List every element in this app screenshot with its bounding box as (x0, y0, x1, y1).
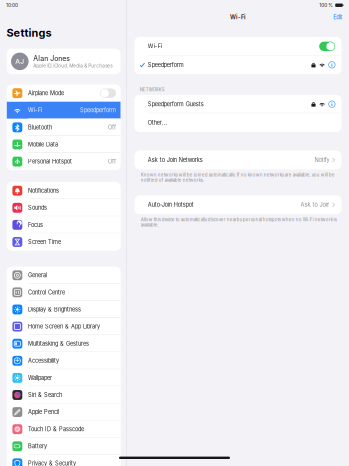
button[interactable]: Sounds (7, 199, 120, 216)
staticText: Privacy & Security (28, 460, 76, 466)
staticText: Speedperform Guests (148, 101, 204, 107)
staticText: Ask to Join Networks (148, 157, 203, 163)
button[interactable]: Other... (135, 113, 341, 132)
button[interactable]: Privacy & Security (7, 455, 120, 466)
staticText: Mobile Data (28, 141, 58, 148)
button[interactable]: Screen Time (7, 233, 120, 250)
staticText: Multitasking & Gestures (28, 340, 89, 347)
button[interactable]: Touch ID & Passcode (7, 421, 120, 438)
button[interactable]: Home Screen & App Library (7, 318, 120, 335)
button[interactable]: Edit (329, 12, 349, 23)
staticText: Apple Pencil (28, 409, 59, 415)
staticText: 10:00 (6, 2, 18, 8)
button[interactable]: Focus (7, 216, 120, 233)
staticText: Known networks will be joined automatica… (141, 172, 335, 183)
staticText: General (28, 272, 47, 279)
staticText: Accessibility (28, 357, 59, 364)
button[interactable]: Display & Brightness (7, 301, 120, 318)
staticText: Other... (148, 119, 168, 126)
staticText: Off (108, 124, 116, 131)
button[interactable]: Accessibility (7, 352, 120, 369)
button[interactable]: Apple Pencil (7, 403, 120, 421)
staticText: Sounds (28, 204, 47, 211)
button[interactable]: Mobile Data (7, 136, 120, 153)
button[interactable]: AJ (7, 49, 120, 74)
staticText: Bluetooth (28, 124, 52, 131)
button[interactable]: Bluetooth (7, 119, 120, 136)
staticText: 100 % (319, 2, 333, 8)
staticText: Ask to Join (300, 201, 329, 208)
button[interactable]: Auto-Join Hotspot (135, 195, 341, 214)
staticText: Speedperform (148, 61, 184, 68)
button[interactable]: Airplane Mode (7, 85, 120, 102)
button[interactable]: Battery (7, 438, 120, 455)
staticText: Notifications (28, 187, 59, 194)
staticText: Focus (28, 221, 43, 228)
staticText: Wi-Fi (230, 14, 246, 21)
staticText: AJ (15, 57, 24, 65)
button[interactable]: Personal Hotspot (7, 153, 120, 170)
staticText: Control Centre (28, 289, 65, 296)
staticText: Alan Jones (33, 54, 70, 63)
staticText: Apple ID, iCloud, Media & Purchases (33, 63, 112, 69)
staticText: Notify (314, 157, 329, 163)
button[interactable]: Control Centre (7, 284, 120, 301)
staticText: Wi-Fi (28, 107, 42, 114)
staticText: Allow this device to automatically disco… (141, 217, 337, 228)
staticText: Screen Time (28, 239, 61, 245)
button[interactable]: General (7, 267, 120, 284)
staticText: Touch ID & Passcode (28, 426, 84, 433)
button[interactable]: Siri & Search (7, 386, 120, 403)
staticText: Off (108, 158, 116, 165)
staticText: Edit (333, 14, 342, 21)
staticText: Speedperform (80, 107, 116, 114)
staticText: Personal Hotspot (28, 158, 72, 165)
staticText: Auto-Join Hotspot (148, 201, 194, 208)
staticText: Display & Brightness (28, 306, 81, 313)
button[interactable]: Wi-Fi (135, 37, 341, 56)
button[interactable]: Speedperform Guests (135, 95, 341, 113)
staticText: Wi-Fi (148, 43, 162, 50)
staticText: Siri & Search (28, 392, 62, 398)
button[interactable]: Notifications (7, 182, 120, 199)
staticText: Wallpaper (28, 374, 52, 381)
button[interactable]: Speedperform (135, 56, 341, 74)
staticText: NETWORKS (140, 87, 165, 92)
staticText: Settings (6, 26, 51, 39)
button[interactable]: Multitasking & Gestures (7, 335, 120, 352)
staticText: Home Screen & App Library (28, 323, 100, 330)
staticText: Battery (28, 443, 47, 450)
button[interactable]: Ask to Join Networks (135, 151, 341, 169)
staticText: Airplane Mode (28, 90, 64, 97)
button[interactable]: Wallpaper (7, 369, 120, 386)
button[interactable]: Wi-Fi (7, 102, 120, 119)
